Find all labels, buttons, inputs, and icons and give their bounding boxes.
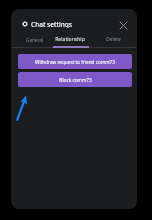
staticText: Chat settings (31, 20, 72, 28)
button[interactable]: Delete (95, 34, 131, 45)
staticText: Delete (106, 36, 121, 43)
staticText: Withdraw request to friend comm73 (35, 59, 115, 65)
button[interactable]: Relationship (52, 34, 88, 45)
button[interactable]: Block comm73 (18, 72, 132, 87)
staticText: Block comm73 (59, 77, 92, 83)
button[interactable]: Withdraw request to friend comm73 (18, 54, 132, 69)
staticText: Relationship (55, 36, 85, 43)
staticText: General (26, 37, 43, 43)
button[interactable]: General (16, 34, 52, 45)
button[interactable]: Close (115, 17, 131, 33)
